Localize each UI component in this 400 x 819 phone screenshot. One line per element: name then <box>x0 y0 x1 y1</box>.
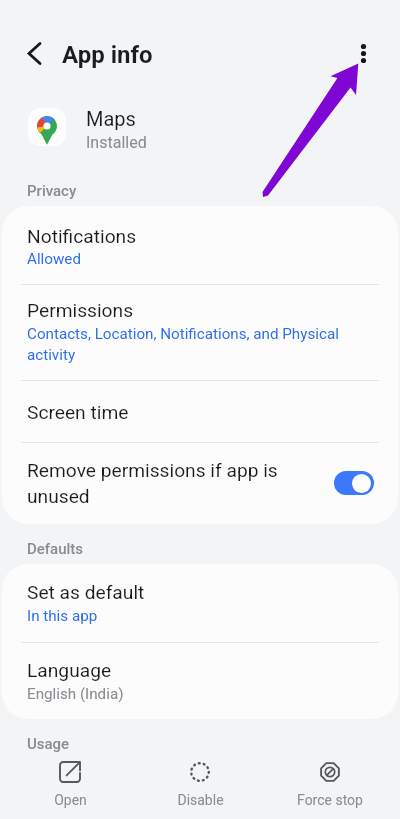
staticText: Remove permissions if app is unused <box>27 459 289 507</box>
staticText: Set as default <box>27 581 145 604</box>
staticText: In this app <box>27 607 98 625</box>
staticText: Defaults <box>27 540 84 558</box>
button[interactable]: Force stop <box>275 762 385 808</box>
staticText: Screen time <box>27 401 129 424</box>
staticText: Open <box>54 792 87 808</box>
button[interactable]: Remove permissions if app is unused <box>334 471 374 495</box>
staticText: Disable <box>177 792 224 808</box>
button[interactable] <box>2 285 398 380</box>
button[interactable] <box>2 100 398 156</box>
button[interactable] <box>2 564 398 642</box>
staticText: Notifications <box>27 225 137 248</box>
button[interactable]: Disable <box>145 762 255 808</box>
button[interactable] <box>2 206 398 284</box>
staticText: English (India) <box>27 685 124 703</box>
button[interactable]: More options <box>341 31 386 76</box>
staticText: Maps <box>86 107 136 130</box>
button[interactable]: Back <box>12 31 57 76</box>
staticText: Contacts, Location, Notifications, and P… <box>27 325 347 363</box>
staticText: Privacy <box>27 182 77 200</box>
staticText: Language <box>27 659 112 682</box>
staticText: Usage <box>27 735 70 753</box>
staticText: Allowed <box>27 250 81 268</box>
button[interactable] <box>2 443 398 524</box>
button[interactable]: Open <box>15 762 125 808</box>
button[interactable] <box>2 381 398 442</box>
staticText: Installed <box>86 133 147 152</box>
staticText: Force stop <box>297 792 363 808</box>
staticText: Permissions <box>27 299 134 322</box>
button[interactable]: App info <box>62 41 153 69</box>
button[interactable] <box>2 643 398 719</box>
